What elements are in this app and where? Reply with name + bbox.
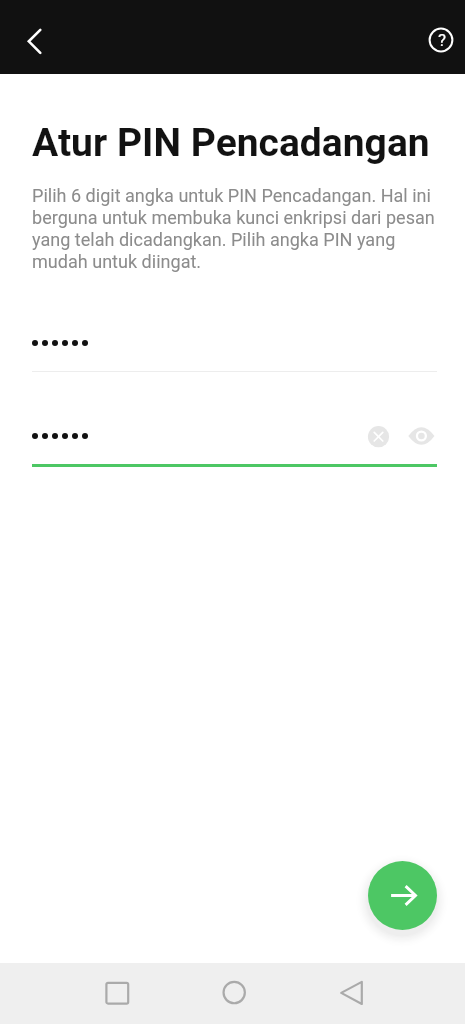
button[interactable]: Clear xyxy=(362,420,395,453)
staticText: Atur PIN Pencadangan xyxy=(32,120,430,166)
staticText: Pilih 6 digit angka untuk PIN Pencadanga… xyxy=(32,185,444,272)
button[interactable]: Back xyxy=(326,968,376,1018)
button[interactable]: PIN entry field xyxy=(32,325,437,372)
staticText: ? xyxy=(438,30,447,50)
button[interactable]: Back xyxy=(8,14,60,66)
button[interactable]: Recent apps xyxy=(92,968,142,1018)
button[interactable]: Home xyxy=(209,968,259,1018)
button[interactable]: Next xyxy=(368,861,437,930)
button[interactable]: Confirm PIN entry field xyxy=(32,418,437,467)
button[interactable]: Show PIN xyxy=(405,420,438,453)
button[interactable]: Help xyxy=(415,14,465,66)
